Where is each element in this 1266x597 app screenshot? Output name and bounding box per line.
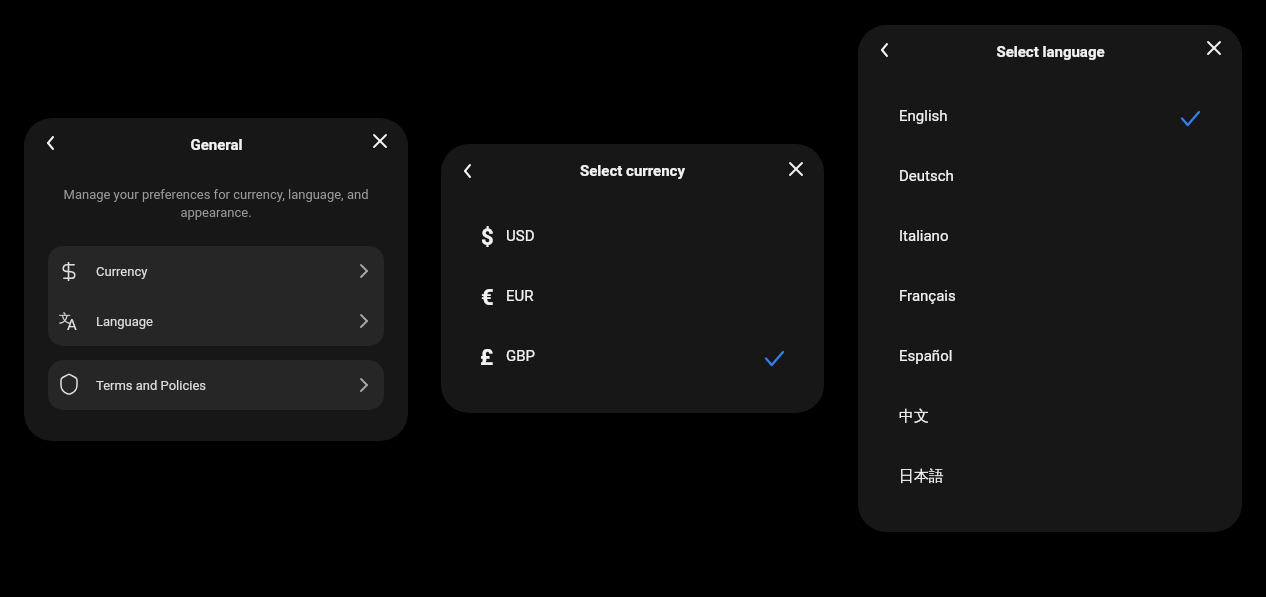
staticText: 日本語 [899, 467, 944, 486]
staticText: 中文 [899, 407, 929, 426]
button[interactable]: Close [368, 129, 392, 153]
button[interactable]: £ [441, 326, 824, 386]
staticText: GBP [506, 347, 536, 365]
staticText: 文 [59, 310, 71, 325]
staticText: General [190, 136, 243, 154]
button[interactable]: Terms and Policies [48, 360, 384, 410]
button[interactable]: Currency [48, 246, 384, 296]
staticText: Español [899, 347, 953, 365]
button[interactable]: $ [441, 206, 824, 266]
staticText: EUR [506, 287, 534, 305]
button[interactable]: Italiano [858, 206, 1242, 266]
staticText: A [67, 316, 77, 334]
staticText: £ [480, 345, 494, 371]
button[interactable]: Back [455, 159, 479, 183]
button[interactable]: Deutsch [858, 146, 1242, 206]
button[interactable]: € [441, 266, 824, 326]
button[interactable]: 日本語 [858, 446, 1242, 506]
button[interactable]: Español [858, 326, 1242, 386]
staticText: Italiano [899, 227, 949, 245]
staticText: Language [96, 314, 153, 329]
button[interactable]: English [858, 86, 1242, 146]
button[interactable]: 中文 [858, 386, 1242, 446]
staticText: Français [899, 287, 956, 305]
staticText: Select currency [580, 162, 685, 180]
staticText: Terms and Policies [96, 378, 206, 393]
staticText: Select language [996, 43, 1105, 61]
button[interactable]: Close [784, 157, 808, 181]
staticText: English [899, 107, 948, 125]
button[interactable]: Back [872, 38, 896, 62]
staticText: Deutsch [899, 167, 954, 185]
button[interactable]: Close [1202, 36, 1226, 60]
staticText: Currency [96, 264, 148, 279]
button[interactable]: Français [858, 266, 1242, 326]
staticText: $ [481, 225, 494, 251]
staticText: USD [506, 227, 535, 245]
staticText: € [481, 285, 494, 311]
button[interactable]: 文 [48, 296, 384, 346]
button[interactable]: Back [38, 131, 62, 155]
staticText: Manage your preferences for currency, la… [60, 187, 372, 220]
